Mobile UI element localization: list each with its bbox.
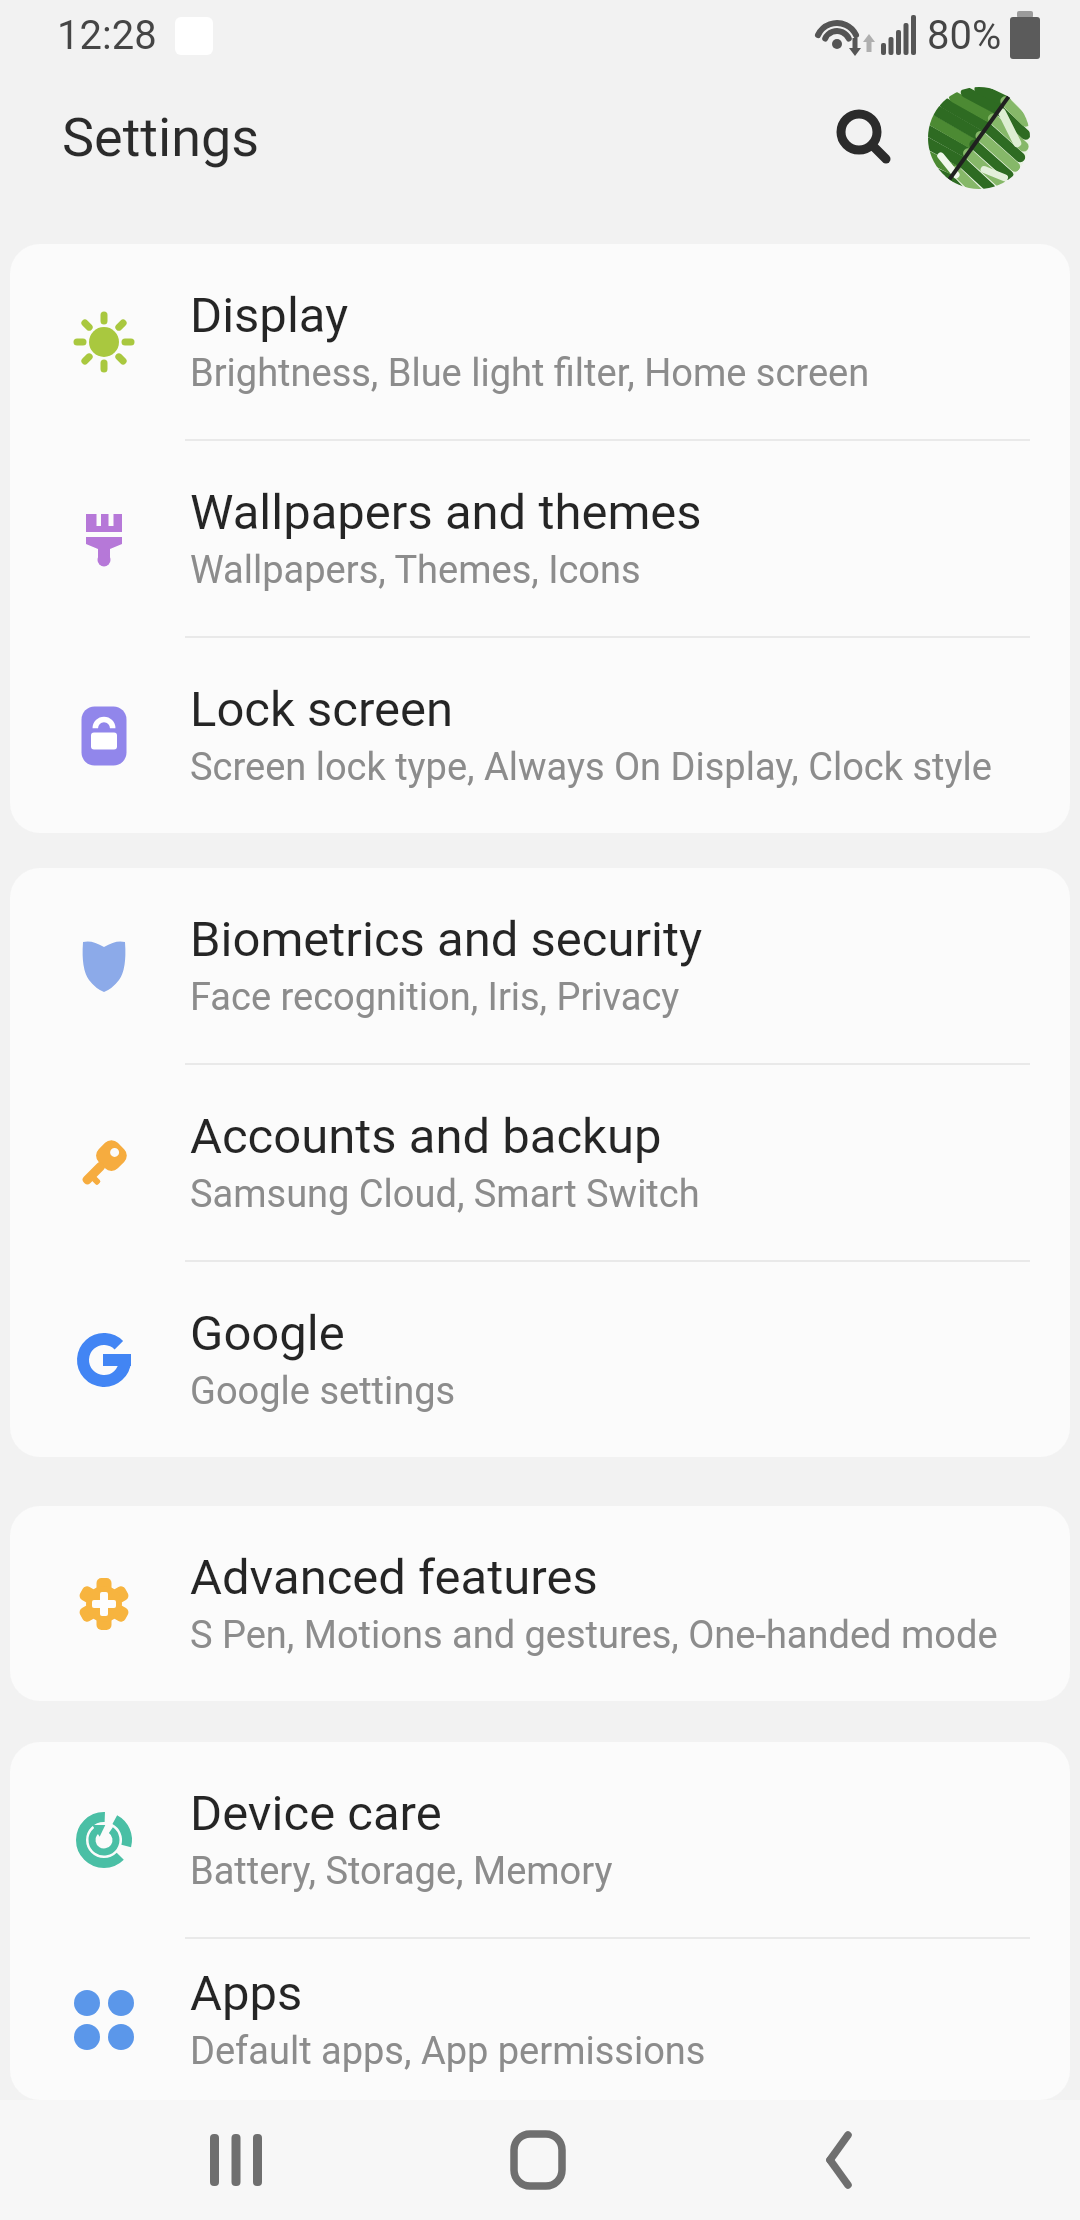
staticText: Samsung Cloud, Smart Switch [190, 1172, 700, 1217]
staticText: Settings [62, 106, 260, 169]
staticText: Biometrics and security [190, 911, 703, 968]
button[interactable]: Lock screen [10, 638, 1070, 833]
staticText: Wallpapers and themes [190, 484, 702, 541]
staticText: Google [190, 1305, 345, 1362]
staticText: Device care [190, 1785, 442, 1842]
staticText: Google settings [190, 1369, 456, 1414]
staticText: Advanced features [190, 1549, 598, 1606]
button[interactable]: Google [10, 1262, 1070, 1457]
button[interactable]: Apps [10, 1939, 1070, 2100]
staticText: Default apps, App permissions [190, 2029, 706, 2074]
button[interactable] [85, 2100, 387, 2220]
staticText: Face recognition, Iris, Privacy [190, 975, 680, 1020]
button[interactable]: Advanced features [10, 1506, 1070, 1701]
staticText: Apps [190, 1965, 303, 2022]
staticText: 12:28 [57, 12, 157, 59]
staticText: Lock screen [190, 681, 454, 738]
button[interactable]: Device care [10, 1742, 1070, 1937]
staticText: Wallpapers, Themes, Icons [190, 548, 641, 593]
staticText: Accounts and backup [190, 1108, 662, 1165]
staticText: S Pen, Motions and gestures, One-handed … [190, 1613, 998, 1658]
button[interactable]: Wallpapers and themes [10, 441, 1070, 636]
button[interactable]: Display [10, 244, 1070, 439]
button[interactable] [387, 2100, 688, 2220]
staticText: Screen lock type, Always On Display, Clo… [190, 745, 992, 790]
button[interactable] [835, 108, 895, 168]
staticText: Battery, Storage, Memory [190, 1849, 613, 1894]
button[interactable] [928, 87, 1030, 189]
button[interactable]: Accounts and backup [10, 1065, 1070, 1260]
button[interactable] [688, 2100, 989, 2220]
staticText: Brightness, Blue light filter, Home scre… [190, 351, 870, 396]
staticText: 80% [927, 12, 1002, 59]
button[interactable]: Biometrics and security [10, 868, 1070, 1063]
staticText: Display [190, 287, 349, 344]
